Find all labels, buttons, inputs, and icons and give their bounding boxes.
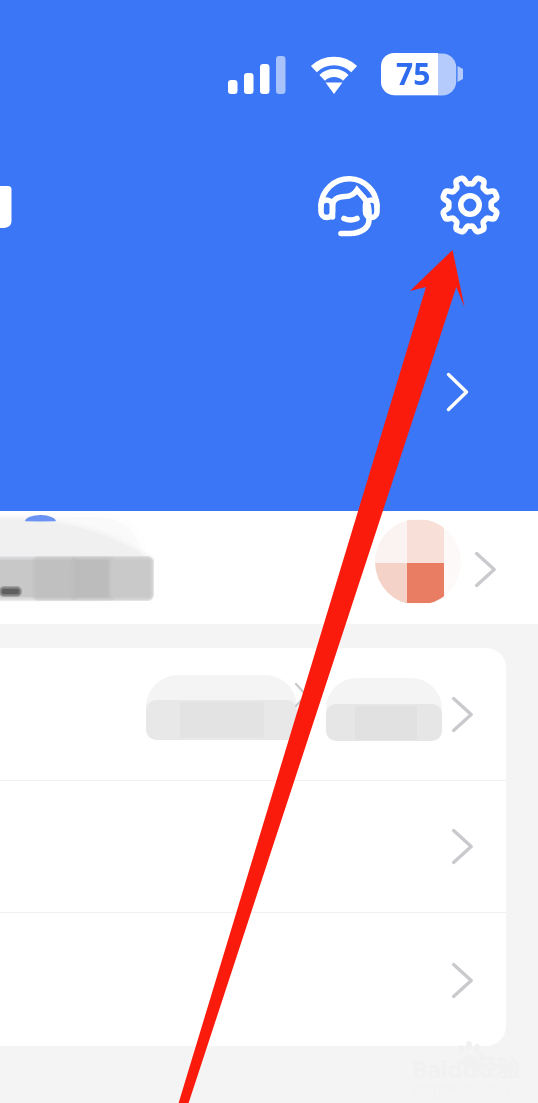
button[interactable]: [0, 511, 538, 624]
button[interactable]: Open: [436, 362, 480, 422]
button[interactable]: [0, 781, 506, 912]
staticText: 75: [396, 53, 431, 94]
button[interactable]: [0, 913, 506, 1046]
button[interactable]: Customer service: [312, 168, 388, 244]
button[interactable]: [0, 648, 506, 780]
button[interactable]: Settings: [432, 167, 508, 243]
